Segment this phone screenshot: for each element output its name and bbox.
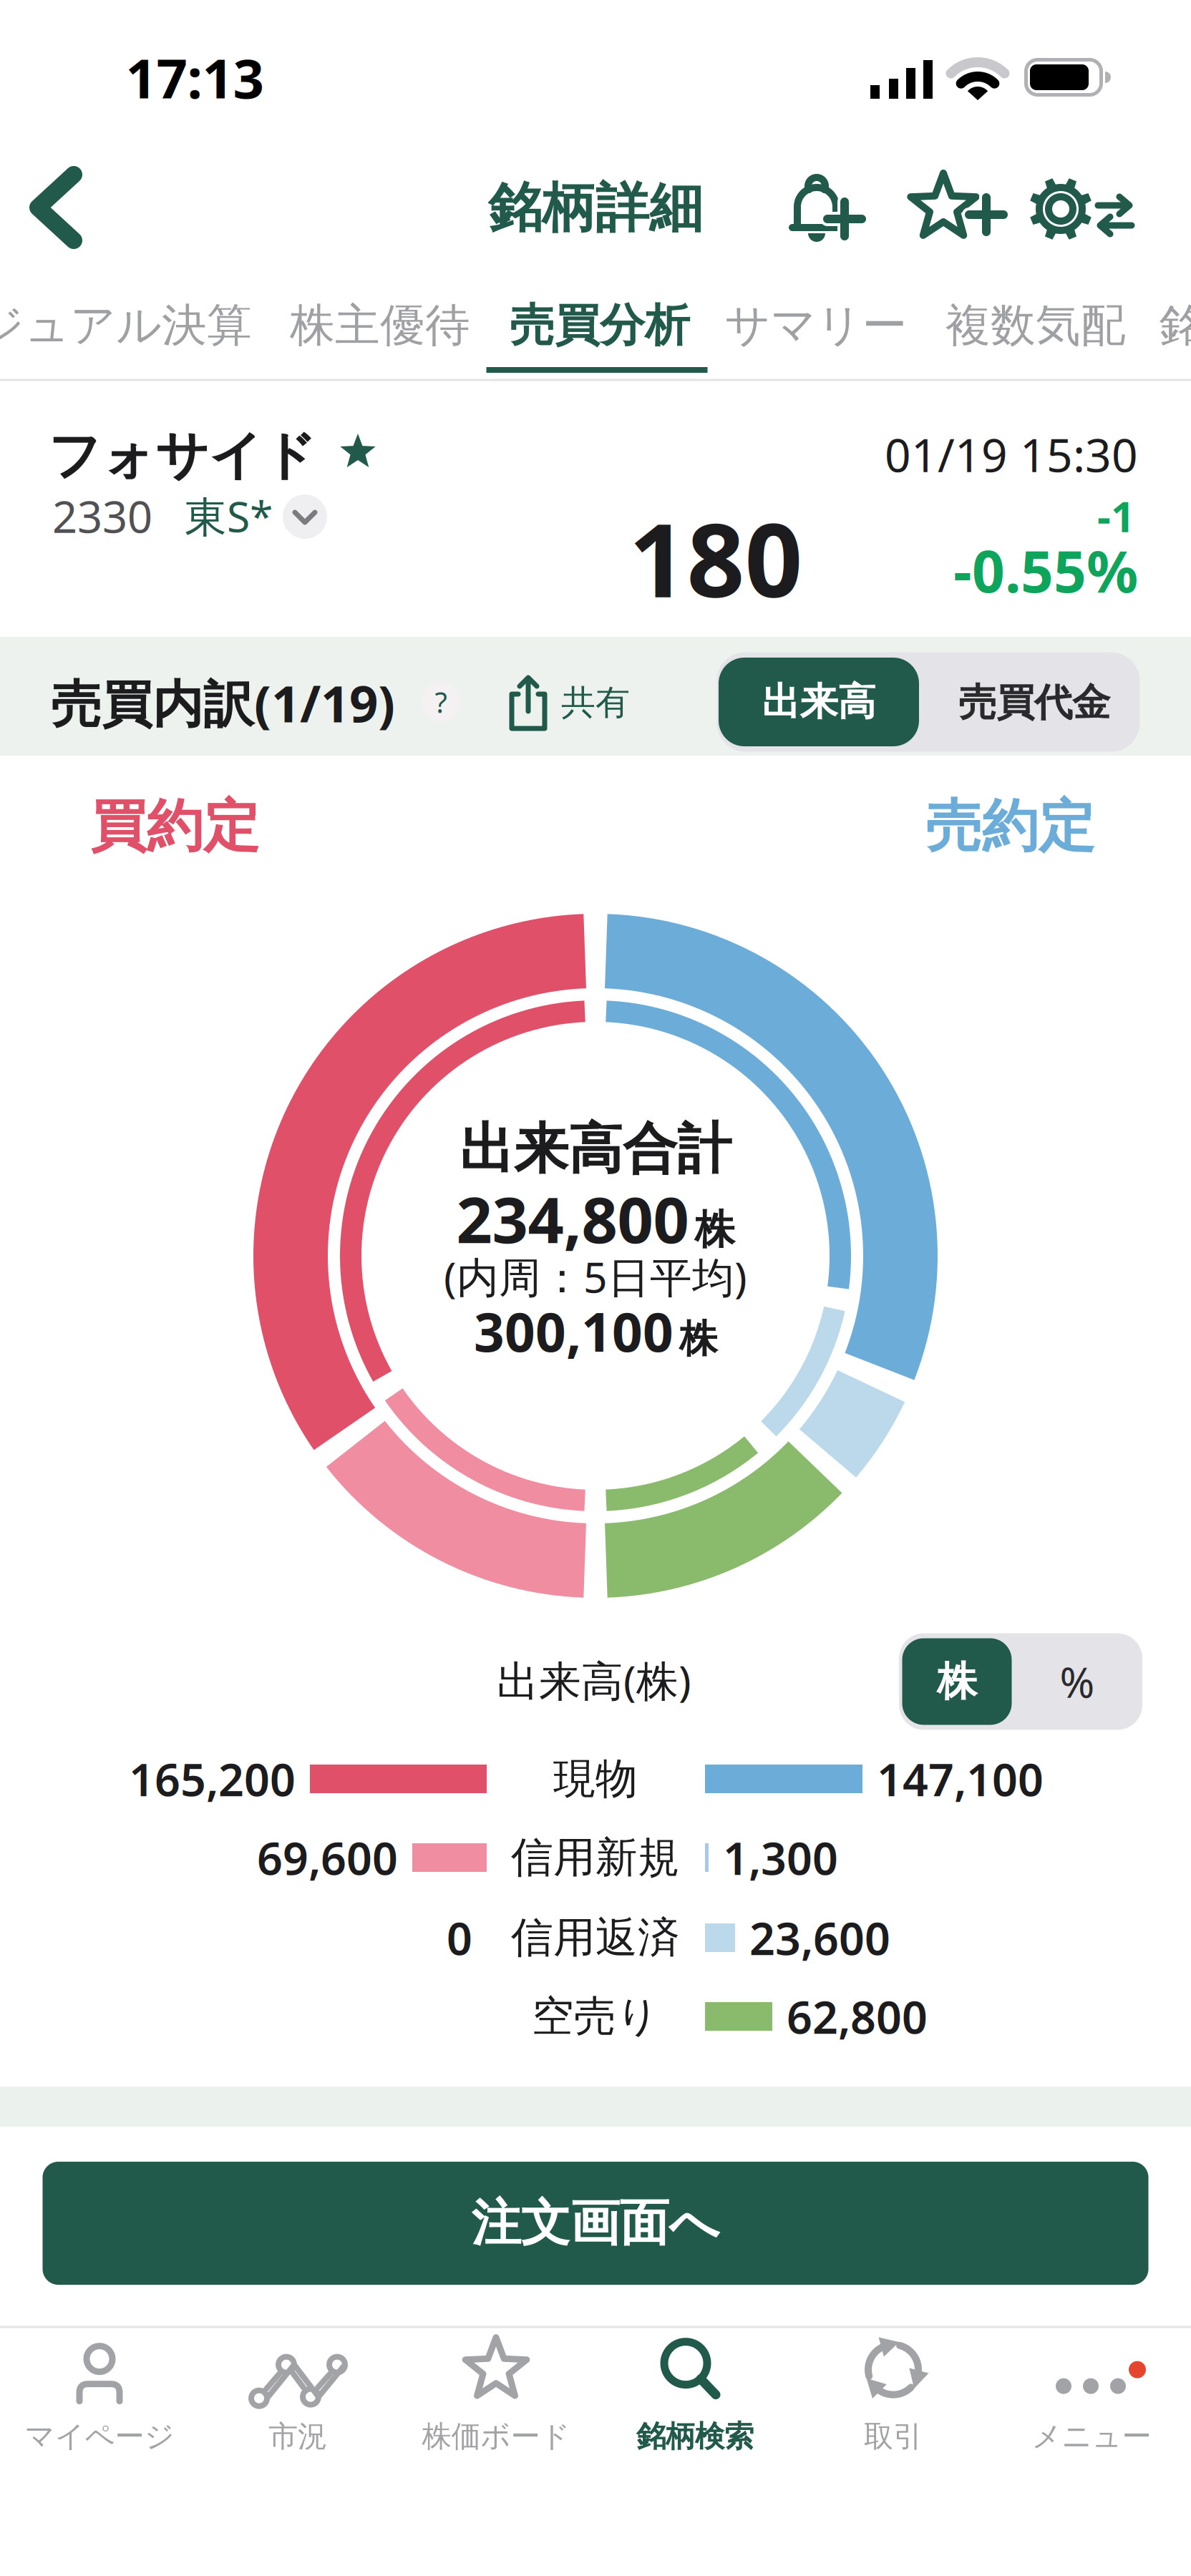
button[interactable]: Settings xyxy=(1029,162,1136,255)
button[interactable]: マイページ xyxy=(1,2318,198,2469)
button[interactable]: Add price alert xyxy=(775,160,868,253)
staticText: フォサイド xyxy=(48,424,316,488)
staticText: 2330 xyxy=(52,487,152,545)
staticText: 0 xyxy=(447,1908,472,1967)
staticText: 株 xyxy=(679,1316,717,1362)
staticText: 234,800 xyxy=(456,1177,689,1260)
button[interactable]: 複数気配 xyxy=(945,290,1126,361)
staticText: 注文画面へ xyxy=(471,2193,720,2254)
button[interactable]: サマリー xyxy=(725,290,907,361)
staticText: 信用返済 xyxy=(511,1912,680,1964)
staticText: 空売り xyxy=(532,1991,659,2042)
staticText: 取引 xyxy=(864,2418,923,2455)
button[interactable]: 銘柄ニュース xyxy=(1159,290,1191,361)
staticText: 買約定 xyxy=(90,792,260,861)
button[interactable]: ビジュアル決算 xyxy=(0,290,252,361)
staticText: % xyxy=(1060,1654,1095,1709)
button[interactable]: 注文画面へ xyxy=(43,2162,1148,2285)
button[interactable]: 市況 xyxy=(199,2318,397,2469)
staticText: 売買代金 xyxy=(958,679,1110,726)
button[interactable]: 出来高 xyxy=(719,658,919,746)
staticText: 市況 xyxy=(268,2418,327,2455)
staticText: 1,300 xyxy=(723,1828,838,1887)
button[interactable]: Change market xyxy=(283,494,327,539)
staticText: 東S* xyxy=(185,488,273,544)
staticText: 株 xyxy=(695,1205,735,1254)
button[interactable]: 株価ボード xyxy=(397,2318,595,2469)
button[interactable]: Back xyxy=(16,165,95,250)
staticText: 出来高(株) xyxy=(497,1652,691,1708)
staticText: 出来高 xyxy=(762,678,876,725)
staticText: 共有 xyxy=(561,682,630,724)
staticText: 01/19 15:30 xyxy=(885,424,1138,485)
button[interactable]: 株 xyxy=(902,1638,1012,1725)
staticText: 23,600 xyxy=(749,1908,890,1967)
staticText: 62,800 xyxy=(787,1987,928,2046)
button[interactable]: メニュー xyxy=(993,2318,1190,2469)
staticText: 165,200 xyxy=(129,1749,296,1809)
button[interactable]: 取引 xyxy=(794,2318,992,2469)
button[interactable]: Add to watchlist xyxy=(902,161,1009,254)
button[interactable]: Help xyxy=(422,683,460,721)
staticText: (内周：5日平均) xyxy=(444,1249,747,1304)
staticText: マイページ xyxy=(25,2418,174,2455)
staticText: 180 xyxy=(629,491,803,625)
staticText: 出来高合計 xyxy=(460,1116,731,1183)
button[interactable]: Share xyxy=(508,674,630,731)
staticText: 300,100 xyxy=(474,1295,674,1366)
button[interactable]: 銘柄検索 xyxy=(596,2318,794,2469)
staticText: 売買内訳(1/19) xyxy=(51,669,395,736)
staticText: -1 xyxy=(1097,488,1135,544)
staticText: 株主優待 xyxy=(290,298,470,353)
staticText: ビジュアル決算 xyxy=(0,298,252,353)
staticText: 69,600 xyxy=(257,1828,398,1887)
staticText: 147,100 xyxy=(877,1749,1044,1809)
button[interactable]: 株主優待 xyxy=(290,290,470,361)
staticText: -0.55% xyxy=(953,532,1138,608)
staticText: 複数気配 xyxy=(945,298,1126,353)
staticText: 株 xyxy=(937,1657,977,1706)
staticText: 銘柄詳細 xyxy=(488,175,703,241)
staticText: 銘柄検索 xyxy=(636,2418,754,2455)
button[interactable]: 売買分析 xyxy=(510,290,690,361)
staticText: 現物 xyxy=(553,1753,638,1805)
staticText: 17:13 xyxy=(126,41,264,113)
staticText: メニュー xyxy=(1032,2418,1151,2455)
button[interactable]: % xyxy=(1018,1638,1136,1725)
staticText: 株価ボード xyxy=(422,2418,570,2455)
staticText: ? xyxy=(435,683,447,721)
staticText: 売約定 xyxy=(925,792,1095,861)
staticText: 売買分析 xyxy=(510,298,690,353)
staticText: 銘柄ニュース xyxy=(1159,298,1191,353)
staticText: 信用新規 xyxy=(511,1832,680,1883)
button[interactable]: 売買代金 xyxy=(927,658,1142,747)
staticText: サマリー xyxy=(725,298,907,353)
